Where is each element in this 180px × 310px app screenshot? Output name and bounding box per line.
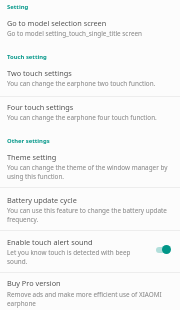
staticText: Two touch settings: [7, 68, 72, 78]
staticText: You can change the theme of the window m…: [7, 163, 168, 181]
button[interactable]: Battery update cycle: [0, 188, 180, 230]
button[interactable]: Two touch settings: [0, 64, 180, 96]
button[interactable]: Four touch settings: [0, 97, 180, 130]
button[interactable]: Enable touch alert sound: [152, 238, 176, 260]
button[interactable]: Enable touch alert sound: [0, 231, 180, 272]
staticText: Four touch settings: [7, 102, 74, 112]
staticText: Enable touch alert sound: [7, 237, 93, 247]
staticText: Let you know touch is detected with beep…: [7, 248, 150, 266]
staticText: Remove ads and make more efficient use o…: [7, 290, 168, 308]
staticText: Go to model selection screen: [7, 18, 107, 28]
staticText: You can use this feature to change the b…: [7, 206, 168, 224]
staticText: Other settings: [7, 137, 50, 145]
staticText: Theme setting: [7, 152, 57, 162]
staticText: Buy Pro version: [7, 278, 61, 288]
staticText: Setting: [7, 3, 29, 11]
staticText: Battery update cycle: [7, 195, 77, 205]
button[interactable]: Go to model selection screen: [0, 14, 180, 42]
button[interactable]: Buy Pro version: [0, 273, 180, 310]
staticText: You can change the earphone four touch f…: [7, 113, 157, 122]
staticText: Go to model setting_touch_single_title s…: [7, 29, 142, 38]
button[interactable]: Theme setting: [0, 148, 180, 187]
staticText: Touch setting: [7, 53, 47, 61]
staticText: You can change the earphone two touch fu…: [7, 79, 156, 88]
